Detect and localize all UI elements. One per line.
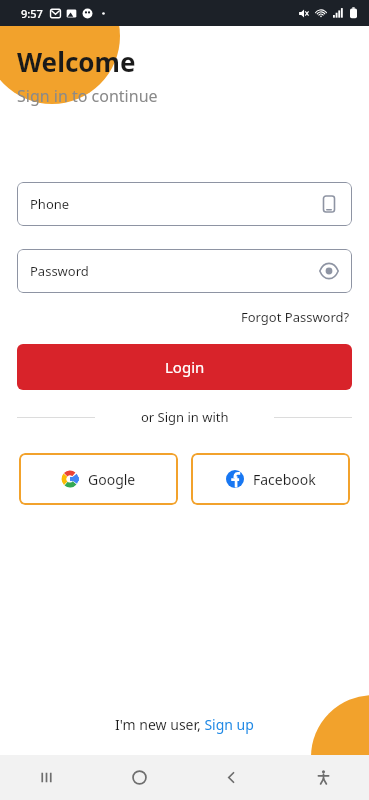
- staticText: I'm new user, Sign up: [115, 715, 254, 734]
- button[interactable]: Google: [19, 453, 178, 505]
- staticText: Sign in to continue: [17, 85, 158, 107]
- staticText: Login: [165, 357, 205, 377]
- button[interactable]: Accessibility: [277, 755, 369, 800]
- staticText: or Sign in with: [141, 408, 229, 426]
- button[interactable]: Phone: [17, 182, 352, 226]
- other: Phone number: [319, 194, 339, 214]
- staticText: Welcome: [17, 44, 136, 79]
- staticText: 9:57: [21, 6, 43, 21]
- button[interactable]: Facebook: [191, 453, 350, 505]
- other: Show password: [319, 261, 339, 281]
- staticText: Facebook: [253, 470, 316, 489]
- button[interactable]: I'm new user, Sign up: [111, 712, 258, 737]
- button[interactable]: Password: [17, 249, 352, 293]
- button[interactable]: Login: [17, 344, 352, 390]
- button[interactable]: Recent apps: [0, 755, 93, 800]
- staticText: Password: [30, 262, 319, 280]
- staticText: Google: [88, 470, 136, 489]
- button[interactable]: Back: [185, 755, 277, 800]
- button[interactable]: Forgot Password?: [239, 306, 352, 328]
- staticText: Phone: [30, 195, 319, 213]
- button[interactable]: Home: [93, 755, 185, 800]
- staticText: Forgot Password?: [241, 308, 350, 326]
